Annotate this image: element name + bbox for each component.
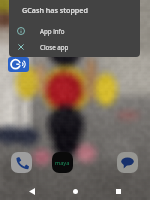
button[interactable]: Recents — [108, 182, 128, 200]
staticText: GCash has stopped — [22, 5, 88, 15]
button[interactable]: Close app — [9, 39, 140, 54]
button[interactable]: Google search — [8, 57, 29, 72]
button[interactable]: Messages — [117, 152, 138, 173]
button[interactable]: App info — [9, 23, 140, 38]
button[interactable]: Home — [65, 182, 85, 200]
staticText: maya — [55, 159, 70, 167]
button[interactable]: Back — [22, 182, 42, 200]
staticText: Close app — [40, 43, 69, 51]
button[interactable]: Maya — [52, 152, 73, 173]
button[interactable]: Phone — [11, 152, 32, 173]
staticText: App info — [40, 27, 65, 35]
